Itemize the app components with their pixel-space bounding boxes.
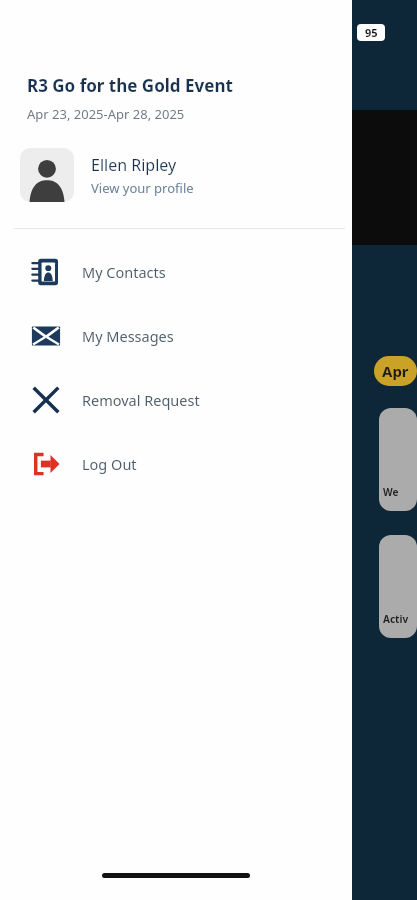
- other: My Contacts: [31, 257, 61, 287]
- staticText: My Messages: [82, 326, 174, 346]
- staticText: Log Out: [82, 454, 137, 474]
- staticText: Ellen Ripley: [91, 154, 177, 176]
- staticText: We: [383, 485, 399, 499]
- staticText: R3 Go for the Gold Event: [27, 74, 233, 97]
- staticText: Activ: [383, 612, 409, 626]
- button[interactable]: We: [379, 408, 417, 511]
- button[interactable]: Ellen Ripley: [0, 144, 352, 206]
- button[interactable]: My Contacts: [0, 240, 352, 304]
- button[interactable]: Removal Request: [0, 368, 352, 432]
- staticText: My Contacts: [82, 262, 166, 282]
- other: Log Out: [31, 449, 61, 479]
- other: Removal Request: [31, 385, 61, 415]
- button[interactable]: Apr: [374, 356, 417, 386]
- button[interactable]: Log Out: [0, 432, 352, 496]
- staticText: Removal Request: [82, 390, 200, 410]
- button[interactable]: My Messages: [0, 304, 352, 368]
- staticText: Apr: [382, 361, 409, 381]
- staticText: View your profile: [91, 179, 194, 197]
- button[interactable]: Activ: [379, 535, 417, 638]
- staticText: Apr 23, 2025-Apr 28, 2025: [27, 105, 185, 123]
- other: My Messages: [30, 320, 62, 352]
- staticText: 95: [365, 25, 378, 40]
